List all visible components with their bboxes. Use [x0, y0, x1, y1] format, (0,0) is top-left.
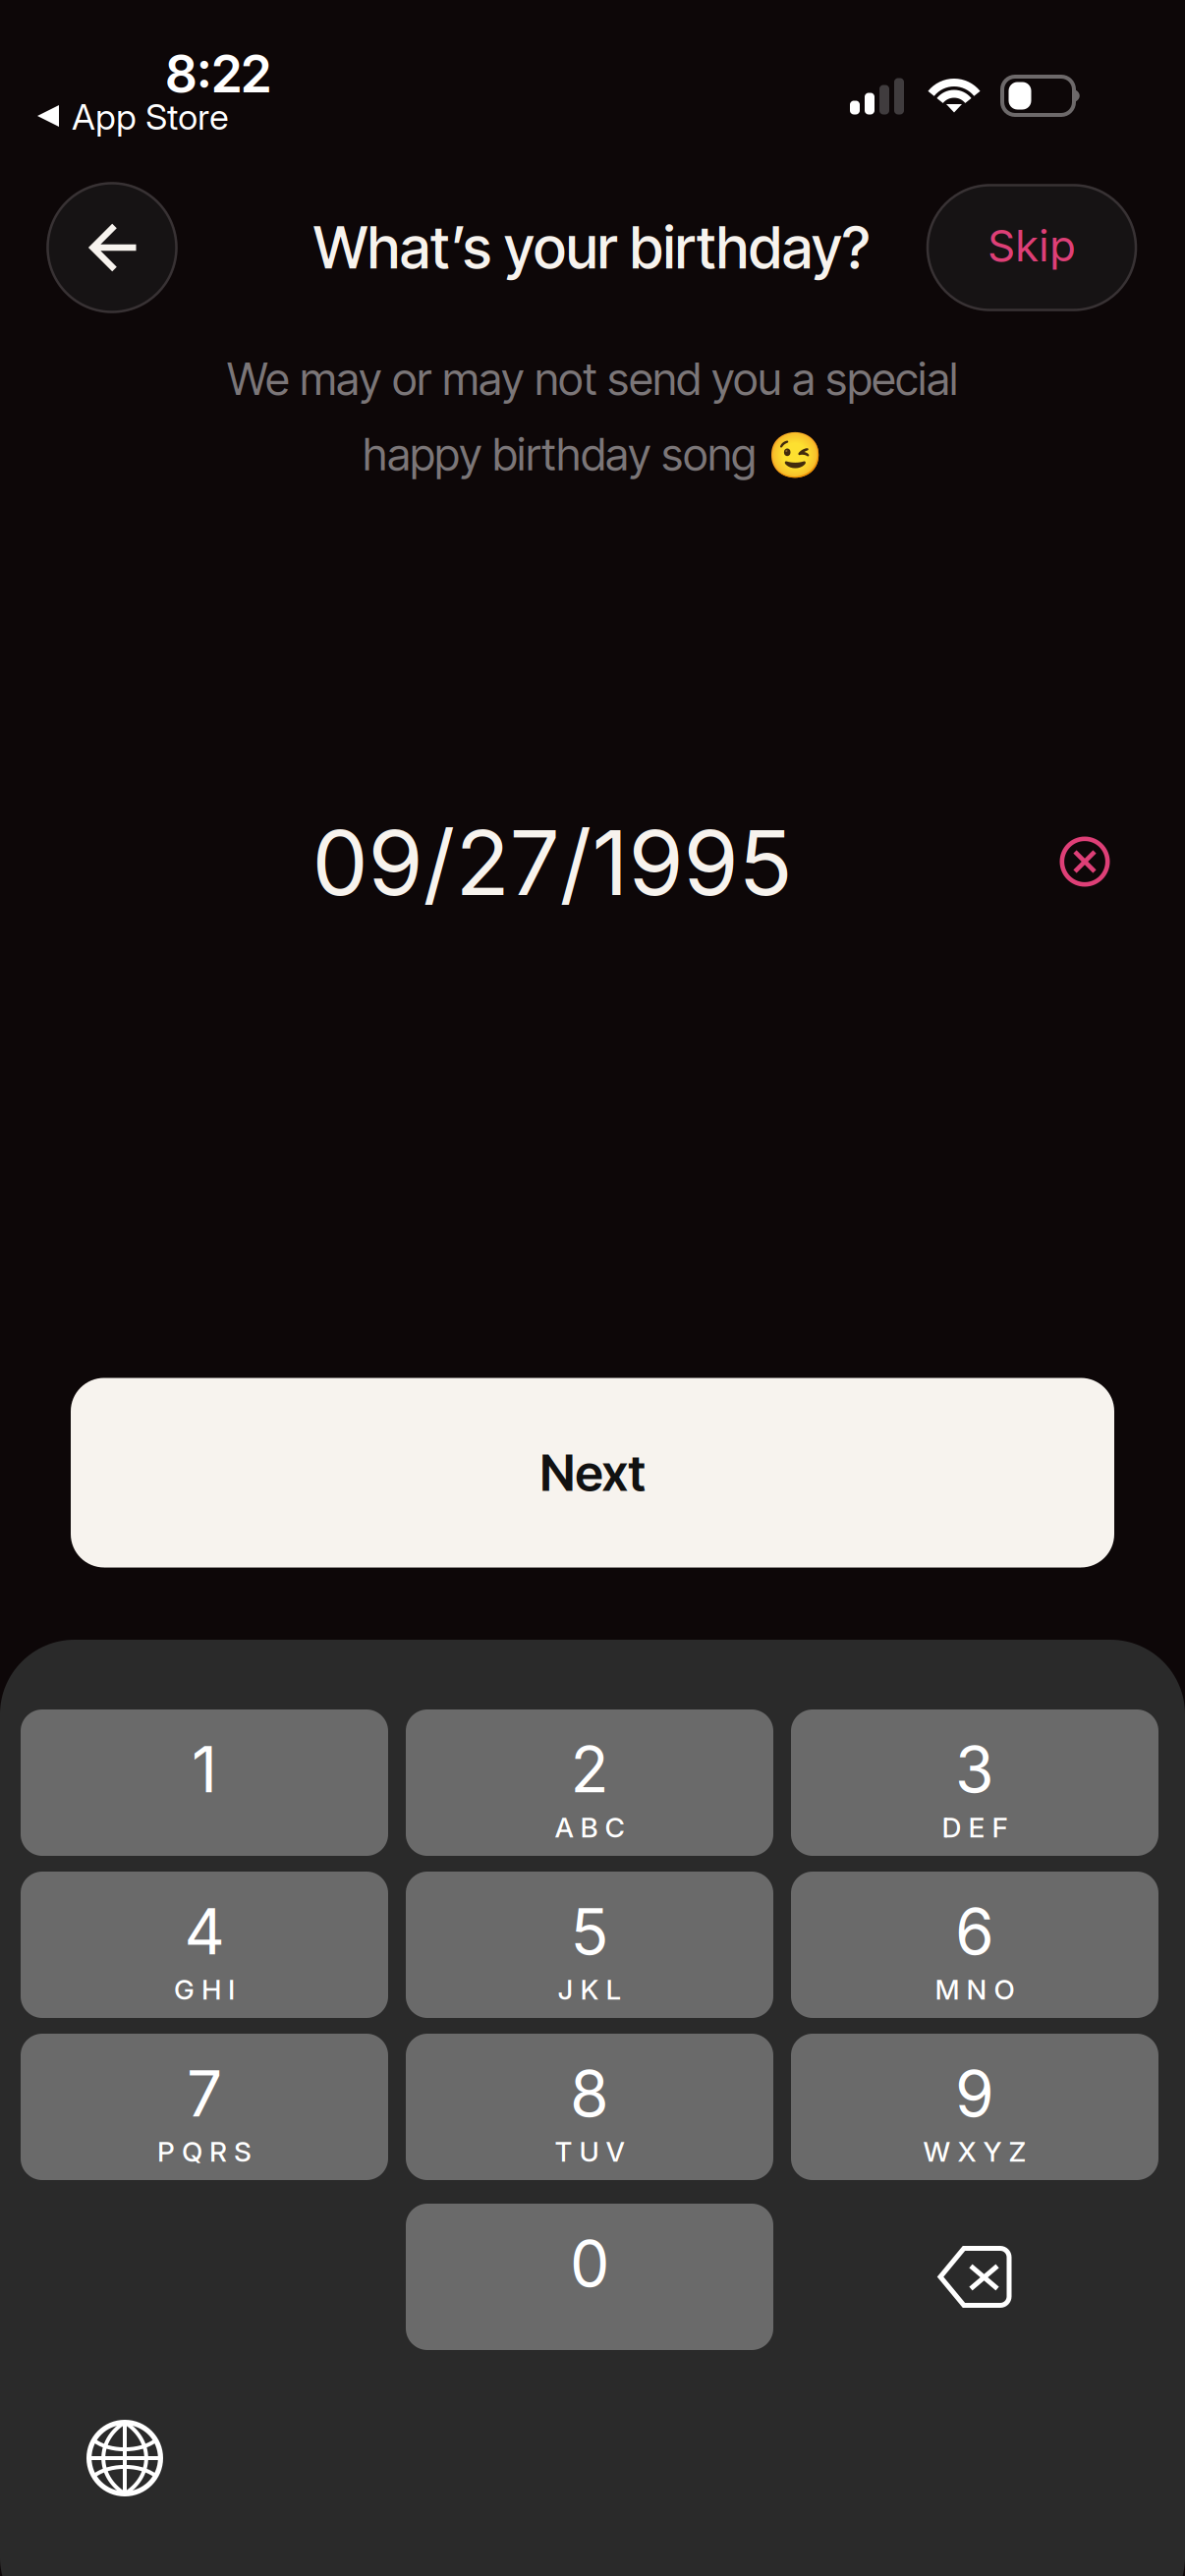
staticText: T U V [555, 2135, 624, 2168]
button[interactable]: 6 [791, 1872, 1158, 2018]
staticText: 0 [570, 2226, 609, 2302]
staticText: 8:22 [166, 43, 271, 105]
staticText: 3 [955, 1731, 994, 1807]
button[interactable]: 0 [406, 2204, 773, 2350]
staticText: W X Y Z [923, 2135, 1026, 2168]
staticText: P Q R S [157, 2135, 252, 2168]
button[interactable]: App Store [37, 92, 244, 138]
button[interactable]: Skip [927, 184, 1137, 311]
staticText: 5 [570, 1893, 609, 1970]
staticText: 4 [184, 1893, 225, 1970]
staticText: 2 [570, 1731, 609, 1807]
staticText: Next [540, 1443, 645, 1503]
button[interactable]: 3 [791, 1709, 1158, 1856]
button[interactable]: Back [47, 182, 177, 313]
staticText: A B C [555, 1811, 624, 1844]
button[interactable]: Delete [791, 2204, 1158, 2350]
staticText: M N O [935, 1973, 1015, 2006]
staticText: G H I [174, 1973, 235, 2006]
button[interactable]: 1 [21, 1709, 388, 1856]
staticText: 7 [187, 2056, 222, 2132]
staticText: 9 [955, 2056, 994, 2132]
button[interactable]: 2 [406, 1709, 773, 1856]
button[interactable]: 9 [791, 2034, 1158, 2180]
button[interactable]: 7 [21, 2034, 388, 2180]
staticText: 8 [570, 2056, 609, 2132]
staticText: 09/27/1995 [312, 809, 792, 916]
staticText: D E F [942, 1811, 1008, 1844]
button[interactable]: 4 [21, 1872, 388, 2018]
button[interactable]: 8 [406, 2034, 773, 2180]
staticText: What’s your birthday? [313, 213, 870, 282]
button[interactable]: 5 [406, 1872, 773, 2018]
staticText: App Store [72, 95, 229, 138]
staticText: We may or may not send you a special hap… [227, 352, 958, 481]
staticText: Skip [987, 219, 1076, 272]
button[interactable]: Clear [1036, 812, 1134, 911]
button[interactable]: Next [71, 1378, 1114, 1568]
staticText: 1 [192, 1731, 217, 1807]
button[interactable]: Switch keyboard [66, 2399, 184, 2517]
staticText: J K L [558, 1973, 621, 2006]
staticText: 6 [955, 1893, 994, 1970]
